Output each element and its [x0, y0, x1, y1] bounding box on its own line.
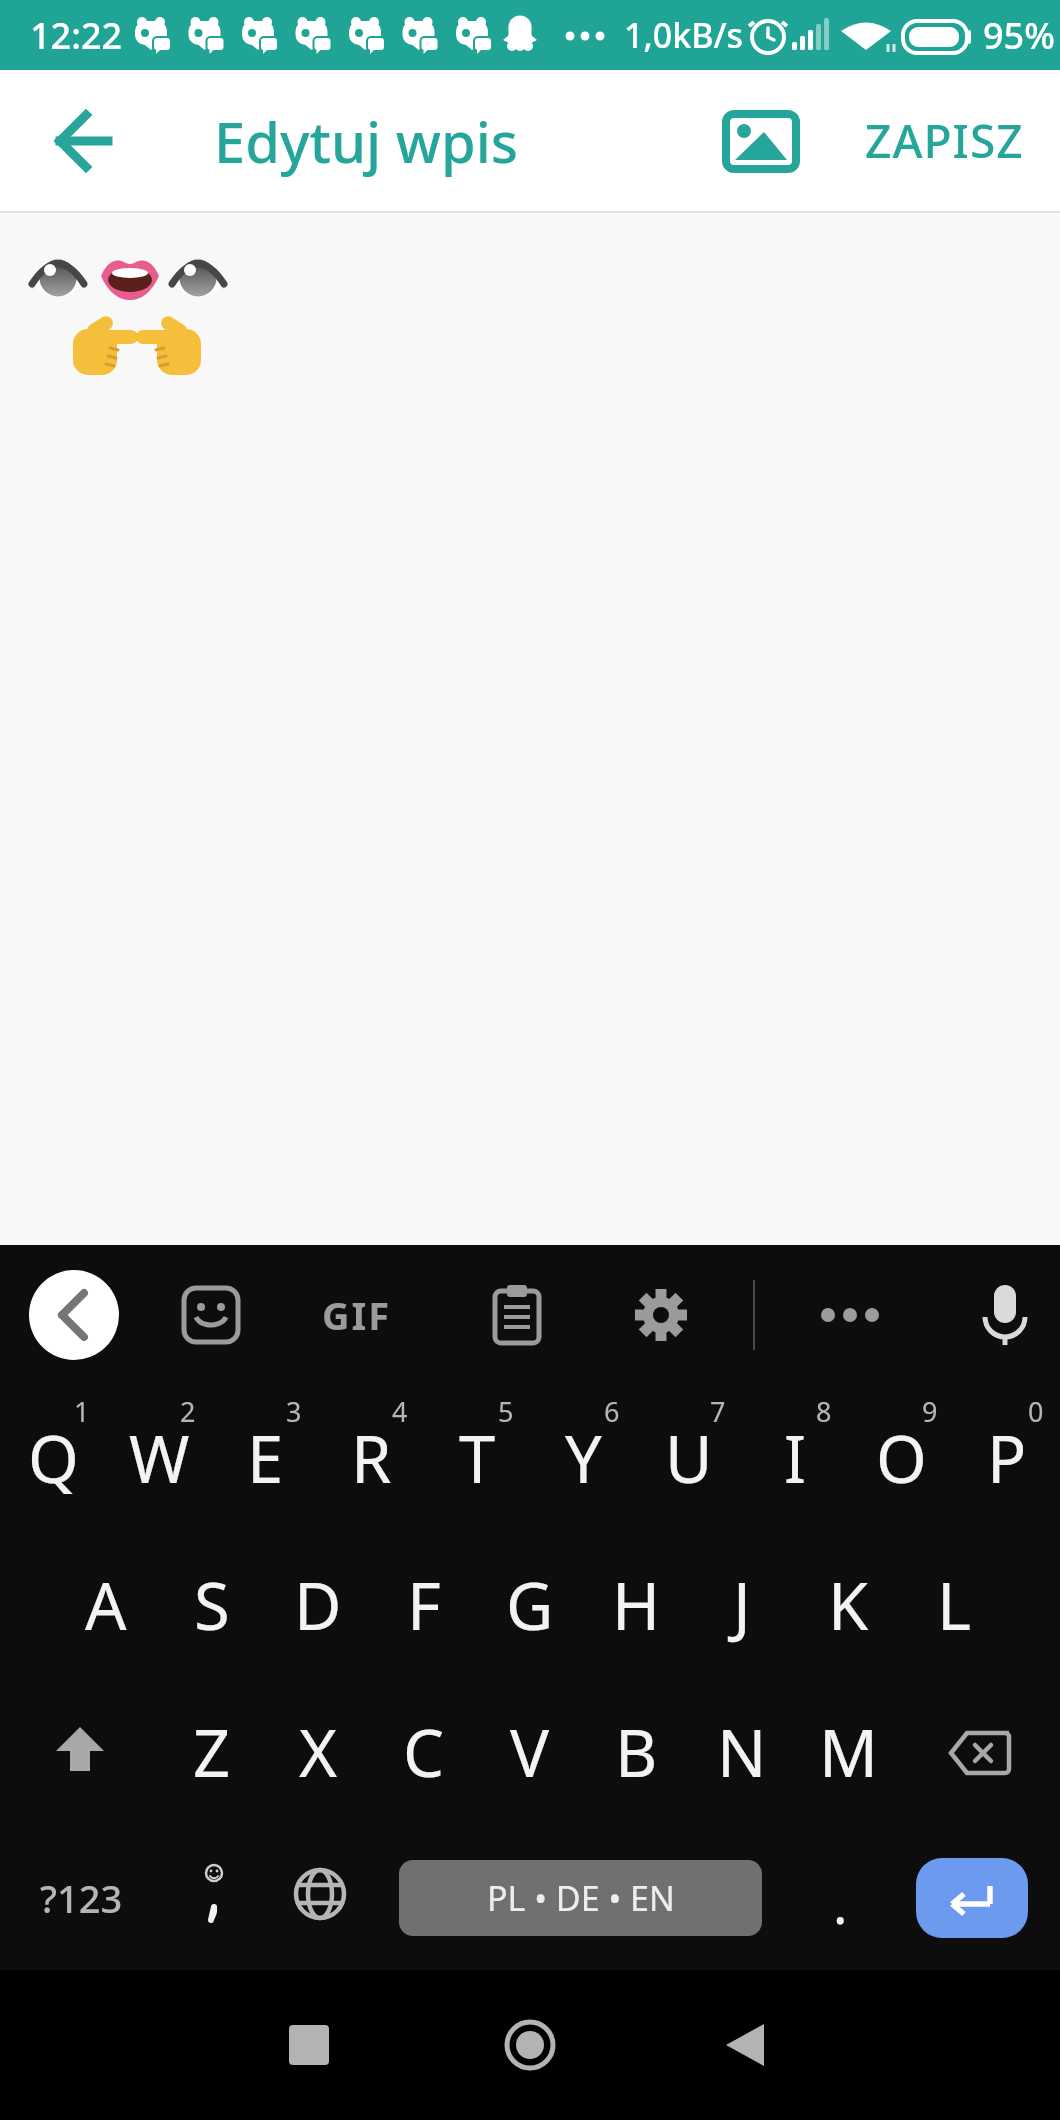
button[interactable]: A — [53, 1532, 159, 1679]
button[interactable] — [706, 87, 814, 195]
button[interactable]: V — [477, 1679, 583, 1826]
button[interactable] — [820, 1285, 880, 1345]
button[interactable] — [487, 1285, 547, 1345]
button[interactable]: Q — [0, 1385, 106, 1532]
button[interactable] — [40, 97, 128, 185]
staticText: 6 — [604, 1393, 620, 1430]
button[interactable] — [180, 1863, 250, 1933]
staticText: Edytuj wpis — [214, 103, 518, 179]
staticText: A — [85, 1561, 127, 1650]
staticText: 9 — [922, 1393, 938, 1430]
staticText: X — [299, 1708, 338, 1797]
button[interactable] — [0, 1679, 159, 1826]
button[interactable] — [504, 2019, 556, 2071]
staticText: 1 — [74, 1393, 90, 1430]
button[interactable]: J — [689, 1532, 795, 1679]
staticText: M — [819, 1708, 878, 1797]
staticText: D — [294, 1561, 342, 1650]
staticText: 7 — [710, 1393, 726, 1430]
button[interactable]: H — [583, 1532, 689, 1679]
button[interactable]: B — [583, 1679, 689, 1826]
button[interactable]: PL • DE • EN — [399, 1860, 762, 1936]
button[interactable]: C — [371, 1679, 477, 1826]
button[interactable]: G — [477, 1532, 583, 1679]
staticText: GIF — [322, 1289, 392, 1341]
button[interactable]: N — [689, 1679, 795, 1826]
button[interactable]: E — [212, 1385, 318, 1532]
staticText: Z — [193, 1708, 231, 1797]
button[interactable] — [724, 2023, 768, 2067]
staticText: . — [833, 1866, 848, 1940]
button[interactable]: S — [159, 1532, 265, 1679]
button[interactable] — [916, 1858, 1028, 1938]
staticText: E — [247, 1414, 284, 1503]
staticText: R — [351, 1414, 392, 1503]
button[interactable]: M — [795, 1679, 901, 1826]
button[interactable] — [632, 1286, 690, 1344]
staticText: V — [510, 1708, 550, 1797]
button[interactable]: W — [106, 1385, 212, 1532]
button[interactable] — [975, 1285, 1035, 1345]
staticText: G — [506, 1561, 554, 1650]
staticText: U — [665, 1414, 713, 1503]
button[interactable]: O — [848, 1385, 954, 1532]
button[interactable] — [289, 2025, 329, 2065]
button[interactable]: D — [265, 1532, 371, 1679]
button[interactable]: T — [424, 1385, 530, 1532]
staticText: ?123 — [40, 1872, 123, 1924]
staticText: S — [194, 1561, 230, 1650]
staticText: 1,0kB/s — [624, 12, 744, 58]
button[interactable]: P — [954, 1385, 1060, 1532]
staticText: T — [459, 1414, 496, 1503]
staticText: ZAPISZ — [865, 109, 1024, 172]
staticText: W — [129, 1414, 190, 1503]
button[interactable]: I — [742, 1385, 848, 1532]
staticText: C — [403, 1708, 445, 1797]
staticText: B — [615, 1708, 658, 1797]
button[interactable]: ZAPISZ — [865, 109, 1024, 172]
staticText: N — [717, 1708, 767, 1797]
staticText: 3 — [286, 1393, 302, 1430]
staticText: 0 — [1028, 1393, 1044, 1430]
button[interactable]: X — [265, 1679, 371, 1826]
staticText: 2 — [180, 1393, 196, 1430]
staticText: K — [828, 1561, 869, 1650]
staticText: F — [407, 1561, 441, 1650]
staticText: H — [612, 1561, 661, 1650]
staticText: O — [876, 1414, 927, 1503]
button[interactable]: K — [795, 1532, 901, 1679]
staticText: L — [937, 1561, 972, 1650]
button[interactable]: L — [901, 1532, 1007, 1679]
staticText: 95% — [983, 11, 1055, 60]
staticText: P — [987, 1414, 1027, 1503]
button[interactable] — [292, 1870, 348, 1926]
button[interactable] — [29, 1270, 119, 1360]
staticText: I — [784, 1414, 807, 1503]
button[interactable]: R — [318, 1385, 424, 1532]
button[interactable]: F — [371, 1532, 477, 1679]
staticText: Y — [565, 1414, 602, 1503]
button[interactable] — [901, 1679, 1060, 1826]
staticText: PL • DE • EN — [487, 1875, 675, 1921]
button[interactable]: U — [636, 1385, 742, 1532]
staticText: 5 — [498, 1393, 514, 1430]
button[interactable]: Y — [530, 1385, 636, 1532]
button[interactable] — [181, 1285, 241, 1345]
staticText: 8 — [816, 1393, 832, 1430]
staticText: J — [733, 1561, 751, 1650]
button[interactable]: Z — [159, 1679, 265, 1826]
staticText: 4 — [392, 1393, 408, 1430]
staticText: Q — [28, 1414, 79, 1503]
staticText: 12:22 — [30, 11, 123, 60]
